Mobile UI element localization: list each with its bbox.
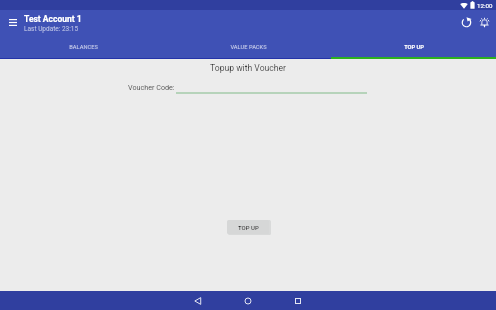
button[interactable]: Notifications xyxy=(475,13,493,31)
button[interactable]: Recents xyxy=(278,291,318,310)
button[interactable]: Back xyxy=(178,291,218,310)
button[interactable]: TOP UP xyxy=(227,220,269,234)
staticText: TOP UP xyxy=(238,224,259,231)
button[interactable]: Menu xyxy=(4,13,22,31)
button[interactable]: BALANCES xyxy=(0,37,166,59)
staticText: 12:00 xyxy=(477,2,493,9)
staticText: Topup with Voucher xyxy=(0,63,496,73)
button[interactable]: TOP UP xyxy=(331,37,496,59)
button[interactable]: VALUE PACKS xyxy=(166,37,331,59)
staticText: BALANCES xyxy=(69,44,98,51)
staticText: TOP UP xyxy=(404,44,424,51)
staticText: Test Account 1 xyxy=(24,14,82,24)
staticText: Last Update: 23:15 xyxy=(24,25,79,33)
button[interactable]: Refresh xyxy=(457,13,475,31)
staticText: Voucher Code: xyxy=(128,83,175,91)
staticText: VALUE PACKS xyxy=(230,44,267,51)
button[interactable]: Home xyxy=(228,291,268,310)
